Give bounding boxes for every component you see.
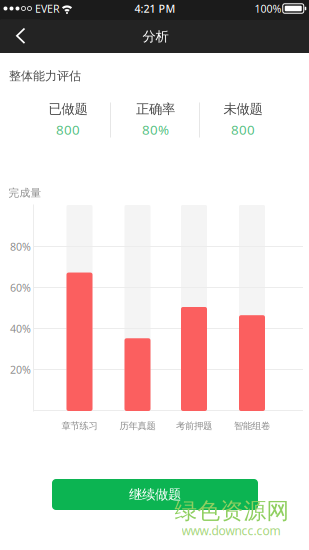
staticText: 历年真题 bbox=[119, 420, 155, 432]
staticText: 分析 bbox=[142, 28, 168, 45]
staticText: 40% bbox=[10, 321, 31, 336]
staticText: 正确率 bbox=[136, 101, 175, 117]
staticText: www.downcc.com bbox=[181, 522, 280, 538]
staticText: 20% bbox=[10, 362, 31, 377]
staticText: 800 bbox=[231, 121, 255, 138]
staticText: 继续做题 bbox=[129, 486, 181, 503]
staticText: 800 bbox=[56, 121, 80, 138]
button[interactable]: Back bbox=[0, 19, 40, 52]
staticText: 绿色资源网 bbox=[174, 497, 289, 525]
button[interactable]: 继续做题 bbox=[52, 479, 258, 510]
staticText: 60% bbox=[10, 280, 31, 295]
staticText: 完成量 bbox=[8, 186, 41, 199]
staticText: 4:21 PM bbox=[134, 1, 175, 16]
staticText: EVER bbox=[35, 1, 60, 16]
staticText: 智能组卷 bbox=[234, 420, 270, 432]
staticText: 100% bbox=[254, 1, 281, 16]
staticText: 章节练习 bbox=[61, 420, 97, 432]
staticText: 整体能力评估 bbox=[9, 69, 81, 83]
staticText: 80% bbox=[10, 239, 31, 254]
staticText: 80% bbox=[142, 121, 169, 138]
staticText: 考前押题 bbox=[176, 420, 212, 432]
staticText: 未做题 bbox=[223, 101, 262, 117]
staticText: 已做题 bbox=[48, 101, 87, 117]
